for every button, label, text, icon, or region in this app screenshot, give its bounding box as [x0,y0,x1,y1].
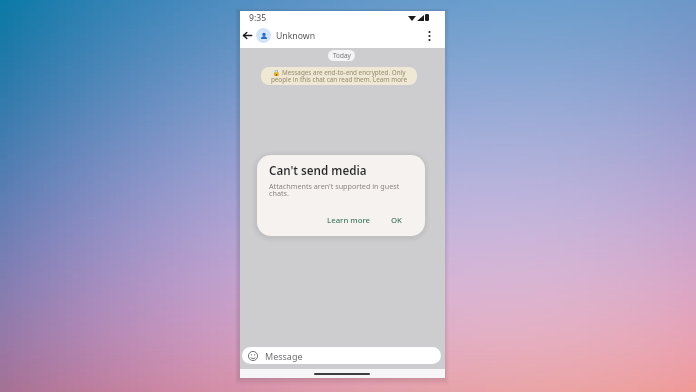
button[interactable]: Contact avatar [256,28,271,43]
staticText: Learn more [327,215,371,226]
staticText: OK [391,215,403,226]
staticText: Can't send media [269,163,367,179]
staticText: Message [265,350,303,362]
staticText: 9:35 [249,12,267,24]
button[interactable]: OK [387,211,407,230]
staticText: Unknown [276,30,316,42]
staticText: Attachments aren't supported in guest ch… [269,181,410,199]
button[interactable]: More options [419,26,439,46]
button[interactable]: Learn more [323,211,375,230]
staticText: Today [333,51,351,60]
staticText: 🔒 Messages are end-to-end encrypted. Onl… [270,68,408,84]
button[interactable]: Back [239,27,256,44]
button[interactable]: Message [242,347,441,364]
